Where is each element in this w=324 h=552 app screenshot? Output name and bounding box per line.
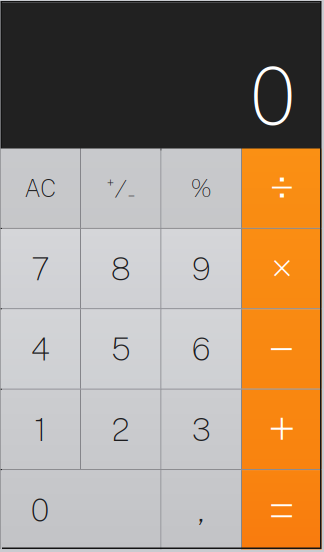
button[interactable]: %	[161, 148, 241, 228]
staticText: 8	[111, 250, 131, 287]
button[interactable]: Subtract	[242, 309, 321, 389]
staticText: 6	[192, 330, 211, 368]
staticText: 3	[192, 411, 211, 448]
staticText: ÷	[269, 158, 295, 218]
button[interactable]: 5	[81, 309, 160, 389]
staticText: =	[268, 478, 296, 541]
staticText: −	[268, 318, 296, 380]
staticText: 4	[31, 330, 50, 368]
staticText: +	[267, 396, 296, 462]
staticText: %	[191, 174, 212, 202]
button[interactable]: 0	[0, 470, 160, 549]
staticText: ⁺∕₋	[107, 172, 135, 205]
button[interactable]: 2	[81, 390, 160, 469]
staticText: 1	[34, 411, 46, 448]
staticText: ,	[198, 491, 205, 529]
button[interactable]: 3	[161, 390, 241, 469]
button[interactable]: Equals	[242, 470, 321, 549]
staticText: AC	[24, 174, 56, 202]
button[interactable]: 4	[0, 309, 80, 389]
button[interactable]: 6	[161, 309, 241, 389]
button[interactable]: 9	[161, 229, 241, 308]
staticText: 2	[112, 411, 130, 448]
button[interactable]: 8	[81, 229, 160, 308]
staticText: 0	[250, 50, 296, 142]
button[interactable]: Add	[242, 390, 321, 469]
button[interactable]: Divide	[242, 148, 321, 228]
staticText: 5	[111, 330, 130, 368]
button[interactable]: ⁺∕₋	[81, 148, 160, 228]
button[interactable]: 1	[0, 390, 80, 469]
staticText: 0	[31, 491, 50, 529]
button[interactable]: 7	[0, 229, 80, 308]
staticText: 7	[31, 250, 49, 287]
staticText: ×	[271, 243, 292, 294]
button[interactable]: ,	[161, 470, 241, 549]
button[interactable]: AC	[0, 148, 80, 228]
staticText: 9	[192, 250, 211, 287]
button[interactable]: Multiply	[242, 229, 321, 308]
